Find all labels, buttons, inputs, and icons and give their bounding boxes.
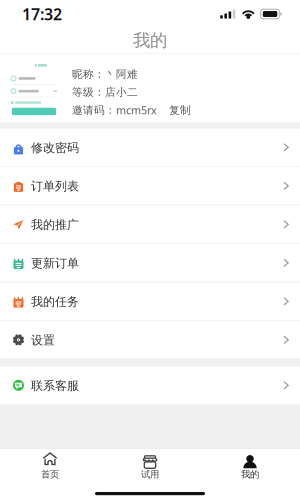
staticText: 订单列表 — [31, 179, 79, 194]
button[interactable]: 设置 — [0, 321, 300, 359]
staticText: 店小二 — [105, 85, 138, 99]
staticText: 我的 — [133, 30, 167, 51]
staticText: 试用 — [141, 469, 159, 480]
staticText: mcm5rx — [116, 103, 157, 117]
button[interactable]: 我的推广 — [0, 206, 300, 243]
staticText: 设置 — [31, 333, 55, 348]
button[interactable]: 订单列表 — [0, 167, 300, 205]
staticText: 17:32 — [22, 3, 62, 25]
button[interactable]: 我的 — [200, 453, 300, 480]
staticText: 我的任务 — [31, 294, 79, 309]
staticText: 丶阿难 — [105, 67, 138, 81]
staticText: 昵称： — [72, 67, 105, 81]
staticText: 邀请码： — [72, 103, 116, 117]
staticText: 复制 — [169, 103, 191, 117]
staticText: 修改密码 — [31, 140, 79, 155]
staticText: 更新订单 — [31, 256, 79, 271]
staticText: 联系客服 — [31, 378, 79, 393]
button[interactable]: 试用 — [100, 453, 200, 480]
button[interactable]: 复制 — [157, 103, 191, 117]
staticText: 我的 — [241, 469, 259, 480]
button[interactable]: 联系客服 — [0, 367, 300, 404]
button[interactable]: 修改密码 — [0, 129, 300, 166]
button[interactable]: 更新订单 — [0, 244, 300, 282]
button[interactable]: 首页 — [0, 453, 100, 480]
button[interactable]: 我的任务 — [0, 283, 300, 320]
staticText: 首页 — [41, 469, 59, 480]
staticText: 等级： — [72, 85, 105, 99]
staticText: 我的推广 — [31, 217, 79, 232]
